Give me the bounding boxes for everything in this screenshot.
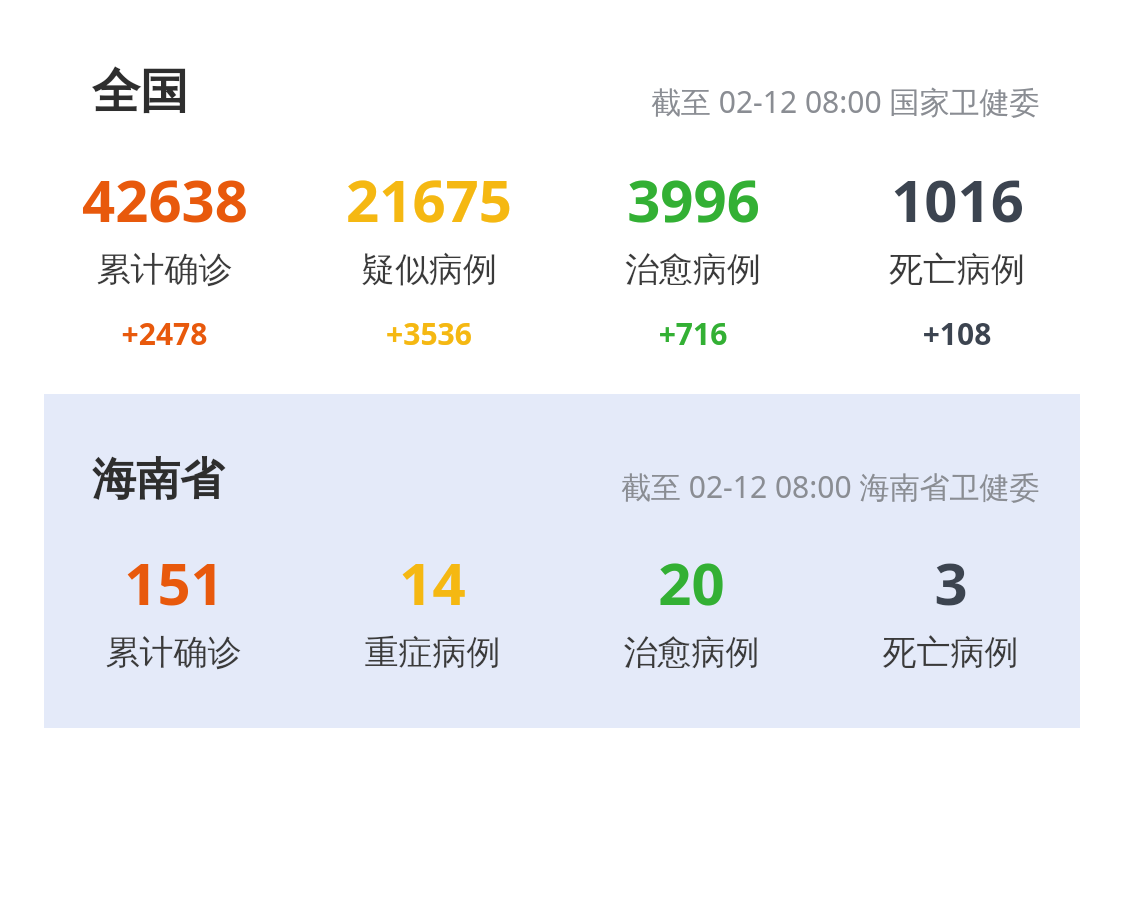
button[interactable]: 42638 bbox=[32, 160, 297, 354]
staticText: 3996 bbox=[627, 160, 760, 236]
staticText: +716 bbox=[561, 313, 825, 354]
staticText: 累计确诊 bbox=[44, 631, 303, 674]
staticText: 截至 02-12 08:00 国家卫健委 bbox=[651, 81, 1040, 122]
staticText: 累计确诊 bbox=[32, 248, 297, 291]
staticText: 重症病例 bbox=[303, 631, 562, 674]
button[interactable]: 21675 bbox=[297, 160, 561, 354]
button[interactable]: 海南省 bbox=[44, 452, 1080, 507]
staticText: 治愈病例 bbox=[561, 248, 825, 291]
button[interactable]: 3996 bbox=[561, 160, 825, 354]
staticText: 疑似病例 bbox=[297, 248, 561, 291]
button[interactable]: 14 bbox=[303, 543, 562, 674]
staticText: 21675 bbox=[346, 160, 512, 236]
staticText: +2478 bbox=[32, 313, 297, 354]
staticText: +3536 bbox=[297, 313, 561, 354]
staticText: 14 bbox=[399, 543, 466, 619]
staticText: 3 bbox=[934, 543, 968, 619]
staticText: 20 bbox=[658, 543, 725, 619]
button[interactable]: 151 bbox=[44, 543, 303, 674]
staticText: 死亡病例 bbox=[821, 631, 1080, 674]
other: 疫情数据统计 bbox=[0, 0, 1121, 918]
staticText: 42638 bbox=[82, 160, 248, 236]
button[interactable]: 3 bbox=[821, 543, 1080, 674]
staticText: +108 bbox=[825, 313, 1089, 354]
button[interactable]: 20 bbox=[562, 543, 821, 674]
staticText: 治愈病例 bbox=[562, 631, 821, 674]
button[interactable]: 全国 bbox=[0, 62, 1121, 122]
staticText: 151 bbox=[124, 543, 224, 619]
staticText: 截至 02-12 08:00 海南省卫健委 bbox=[621, 466, 1040, 507]
staticText: 1016 bbox=[891, 160, 1024, 236]
button[interactable]: 1016 bbox=[825, 160, 1089, 354]
staticText: 全国 bbox=[92, 62, 188, 122]
staticText: 死亡病例 bbox=[825, 248, 1089, 291]
staticText: 海南省 bbox=[92, 452, 224, 507]
